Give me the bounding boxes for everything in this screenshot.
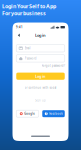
button[interactable]: Email [16, 44, 65, 52]
staticText: For your business [2, 10, 46, 17]
button[interactable]: Back [16, 32, 22, 38]
staticText: Login [35, 73, 46, 79]
staticText: Email [25, 46, 31, 50]
button[interactable]: Google [16, 110, 39, 117]
staticText: Facebook [49, 112, 62, 115]
button[interactable]: Login [16, 73, 65, 80]
staticText: Password [25, 57, 37, 60]
staticText: Sign up [35, 99, 46, 102]
staticText: Google [24, 112, 35, 115]
staticText: or continue with social [24, 86, 56, 89]
button[interactable]: Forgot password? [42, 64, 65, 67]
button[interactable]: f [42, 110, 65, 117]
staticText: Login [35, 33, 46, 38]
staticText: f [46, 112, 47, 115]
staticText: Forgot password? [42, 64, 65, 67]
button[interactable]: Password [16, 55, 65, 62]
staticText: Login Your Self to App [2, 3, 56, 10]
staticText: 9:41 [16, 25, 23, 29]
